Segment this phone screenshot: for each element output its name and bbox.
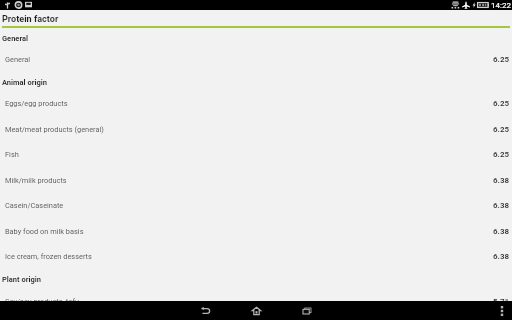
button[interactable]: Casein/Caseinate — [0, 192, 512, 218]
staticText: Ice cream, frozen desserts — [5, 252, 92, 261]
staticText: Fish — [5, 150, 19, 159]
button[interactable]: Milk/milk products — [0, 167, 512, 193]
button[interactable]: General — [0, 46, 512, 72]
staticText: 6.38 — [493, 176, 510, 185]
staticText: 6.25 — [493, 55, 510, 64]
button[interactable]: Recent apps — [290, 301, 324, 320]
button[interactable]: Soy/soy products, tofu — [0, 288, 512, 314]
staticText: Soy/soy products, tofu — [5, 297, 80, 306]
staticText: Meat/meat products (general) — [5, 125, 104, 134]
button[interactable]: Animal origin — [0, 73, 512, 91]
button[interactable]: Plant origin — [0, 270, 512, 288]
staticText: Plant origin — [2, 275, 41, 284]
staticText: 6.25 — [493, 150, 510, 159]
button[interactable]: Baby food on milk basis — [0, 218, 512, 244]
button[interactable]: Fish — [0, 141, 512, 167]
button[interactable]: Eggs/egg products — [0, 90, 512, 116]
button[interactable]: Back — [188, 301, 222, 320]
staticText: Milk/milk products — [5, 176, 67, 185]
staticText: 6.25 — [493, 125, 510, 134]
staticText: Animal origin — [2, 78, 47, 87]
staticText: General — [5, 55, 31, 64]
button[interactable]: Meat/meat products (general) — [0, 116, 512, 142]
button[interactable]: Ice cream, frozen desserts — [0, 243, 512, 269]
staticText: 6.25 — [493, 99, 510, 108]
staticText: General — [2, 34, 29, 43]
button[interactable]: General — [0, 29, 512, 47]
staticText: 6.38 — [493, 201, 510, 210]
button[interactable]: Home — [239, 301, 273, 320]
staticText: Casein/Caseinate — [5, 201, 64, 210]
staticText: Baby food on milk basis — [5, 227, 84, 236]
staticText: 6.38 — [493, 252, 510, 261]
staticText: Eggs/egg products — [5, 99, 68, 108]
staticText: Protein factor — [2, 14, 59, 25]
staticText: 6.38 — [493, 227, 510, 236]
staticText: 14:22 — [491, 1, 511, 10]
button[interactable]: More options — [492, 301, 512, 320]
staticText: 5.71 — [493, 297, 510, 306]
